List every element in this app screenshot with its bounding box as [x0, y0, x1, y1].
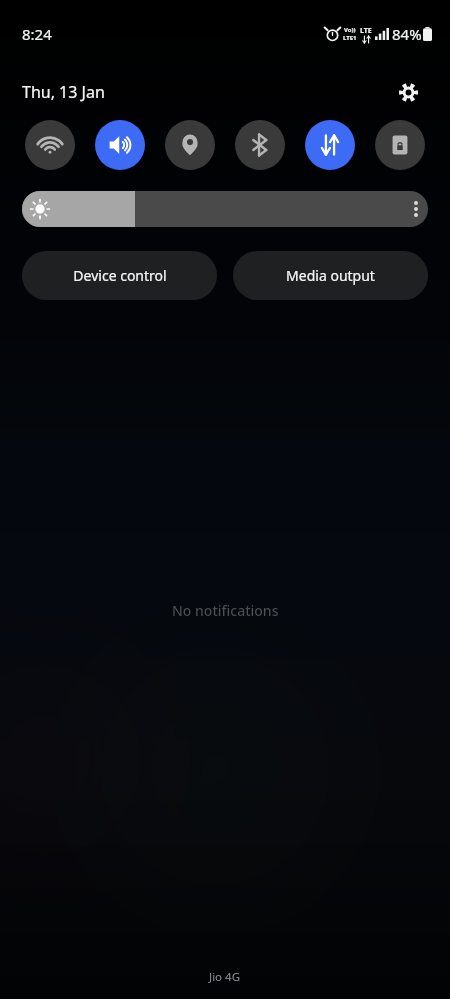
button[interactable]: Location — [165, 120, 215, 170]
staticText: No notifications — [172, 601, 279, 620]
staticText: Device control — [73, 266, 167, 285]
button[interactable]: Wi-Fi — [25, 120, 75, 170]
button[interactable]: Brightness — [22, 191, 428, 227]
staticText: LTE1 — [343, 34, 357, 42]
staticText: Vo)) — [344, 26, 356, 34]
staticText: 8:24 — [22, 24, 52, 44]
button[interactable]: Sound — [95, 120, 145, 170]
staticText: LTE — [360, 26, 372, 36]
button[interactable]: Device control — [22, 251, 217, 300]
staticText: 84% — [392, 24, 422, 44]
button[interactable]: Mobile data — [305, 120, 355, 170]
button[interactable]: Bluetooth — [235, 120, 285, 170]
button[interactable]: Settings — [391, 75, 425, 109]
staticText: Media output — [286, 266, 375, 285]
button[interactable]: Auto rotate lock — [375, 120, 425, 170]
button[interactable]: Media output — [233, 251, 428, 300]
staticText: Jio 4G — [209, 969, 241, 985]
staticText: Thu, 13 Jan — [22, 81, 105, 103]
